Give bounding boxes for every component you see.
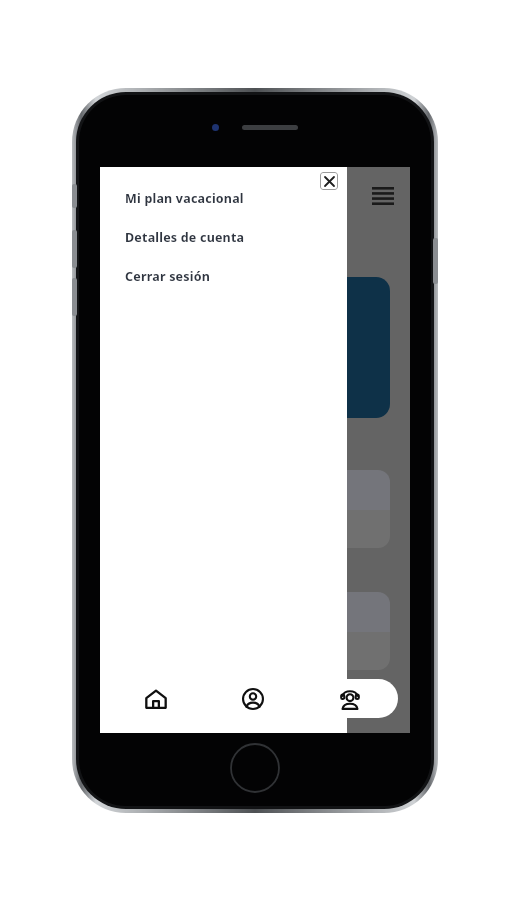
button[interactable]: Mi plan vacacional	[125, 187, 347, 209]
button[interactable]: WhatsApp	[136, 592, 390, 670]
button[interactable]: Menú	[368, 181, 398, 211]
button[interactable]: Soporte	[301, 679, 398, 718]
button[interactable]: Inicio	[107, 679, 204, 718]
button[interactable]: Detalles de cuenta	[125, 226, 347, 248]
button[interactable]: Perfil	[204, 679, 301, 718]
button[interactable]: Detalles de cuenta	[136, 470, 390, 548]
button[interactable]	[136, 277, 390, 418]
button[interactable]: Cerrar	[320, 172, 338, 190]
staticText: Detalles de cuenta	[125, 229, 245, 246]
button[interactable]: Cerrar sesión	[125, 265, 347, 287]
staticText: Mi plan vacacional	[125, 190, 244, 207]
staticText: Cerrar sesión	[125, 268, 211, 285]
